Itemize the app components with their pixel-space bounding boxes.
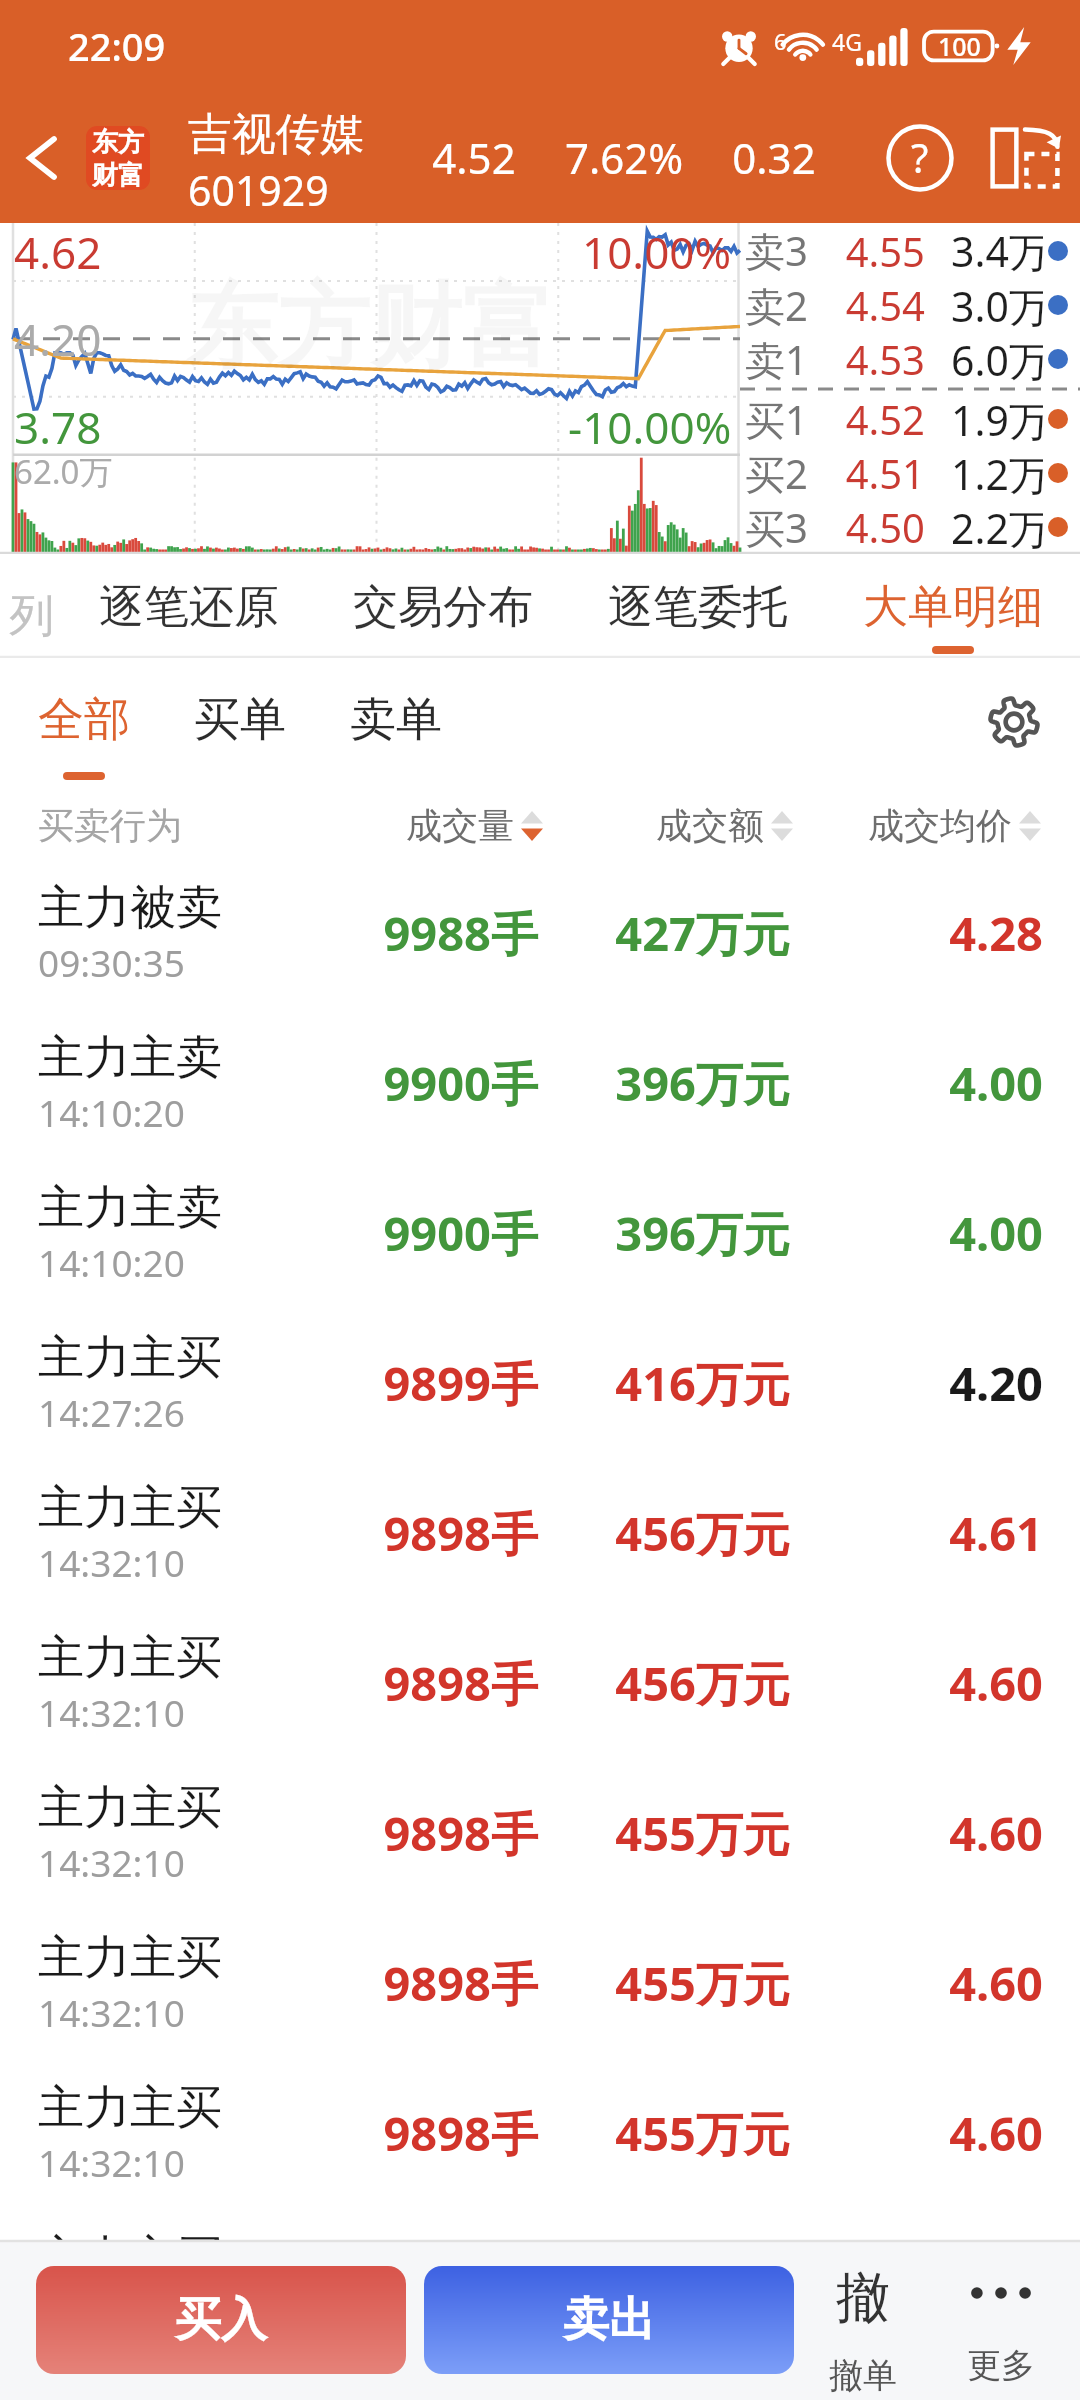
staticText: 456万元 (538, 1651, 790, 1715)
button[interactable]: 成交额 (656, 803, 793, 848)
staticText: 62.0万 (14, 449, 113, 494)
button[interactable]: 撤 (798, 2240, 928, 2400)
staticText: 更多 (967, 2344, 1035, 2387)
staticText: 4.50 (808, 500, 925, 554)
staticText: 卖单 (350, 691, 442, 749)
button[interactable]: 买2 (740, 446, 1080, 500)
staticText: 东方财富 (186, 269, 554, 385)
staticText: 大单明细 (863, 579, 1043, 636)
button[interactable]: 卖3 (740, 223, 1080, 278)
staticText: 4.51 (808, 446, 925, 500)
staticText: 456万元 (538, 1501, 790, 1565)
button[interactable]: 主力主买 (0, 1310, 1080, 1460)
button[interactable]: 主力主卖 (0, 1010, 1080, 1160)
staticText: -10.00% (568, 397, 732, 457)
button[interactable]: 买单 (194, 658, 286, 780)
staticText: 4G (832, 26, 862, 57)
staticText: 主力主买 (38, 1479, 222, 1537)
button[interactable]: 逐笔委托 (570, 554, 825, 658)
staticText: 4.54 (808, 278, 925, 332)
staticText: 卖出 (563, 2291, 655, 2349)
staticText: 东方 (92, 126, 144, 159)
staticText: 主力主买 (38, 2229, 222, 2240)
staticText: 财富 (92, 159, 144, 190)
button[interactable]: 主力主卖 (0, 1160, 1080, 1310)
staticText: 427万元 (538, 901, 790, 965)
staticText: 卖1 (745, 332, 808, 386)
staticText: 交易分布 (353, 579, 533, 636)
staticText: 逐笔委托 (608, 579, 788, 636)
button[interactable]: 卖单 (350, 658, 442, 780)
staticText: 9900手 (328, 1201, 538, 1265)
staticText: 14:10:20 (38, 1087, 185, 1137)
button[interactable]: 主力主买 (0, 1760, 1080, 1910)
staticText: 撤单 (829, 2354, 897, 2397)
button[interactable]: 买3 (740, 500, 1080, 554)
button[interactable]: More (936, 2240, 1066, 2400)
staticText: 6 (774, 26, 787, 56)
staticText: 成交量 (406, 803, 514, 848)
staticText: 主力主卖 (38, 1029, 222, 1087)
button[interactable]: 主力主买 (0, 1910, 1080, 2060)
staticText: 14:32:10 (38, 1687, 185, 1737)
button[interactable]: Back (0, 92, 86, 223)
staticText: 14:32:10 (38, 1537, 185, 1587)
staticText: 4.60 (790, 1951, 1043, 2015)
staticText: 列 (9, 588, 54, 645)
staticText: 9899手 (328, 1351, 538, 1415)
button[interactable]: 卖1 (740, 332, 1080, 386)
button[interactable]: 成交量 (406, 803, 543, 848)
button[interactable]: 主力主买 (0, 1460, 1080, 1610)
staticText: 14:32:10 (38, 1987, 185, 2037)
button[interactable]: 全部 (38, 658, 130, 780)
staticText: 9898手 (328, 1651, 538, 1715)
staticText: 09:30:35 (38, 937, 185, 987)
staticText: 卖3 (745, 223, 808, 278)
staticText: 成交额 (656, 803, 764, 848)
staticText: 0.32 (700, 129, 848, 186)
staticText: 14:10:20 (38, 1237, 185, 1287)
staticText: 4.20 (790, 1351, 1043, 1415)
button[interactable]: 买1 (740, 392, 1080, 446)
button[interactable]: Help (870, 92, 970, 223)
staticText: 4.00 (790, 1201, 1043, 1265)
staticText: 9988手 (328, 901, 538, 965)
button[interactable]: 买入 (36, 2266, 406, 2374)
button[interactable]: 主力被卖 (0, 860, 1080, 1010)
staticText: 3.78 (14, 397, 102, 457)
staticText: 14:32:10 (38, 1837, 185, 1887)
button[interactable]: Switch layout (970, 92, 1080, 223)
staticText: 吉视传媒 (188, 107, 364, 162)
staticText: 2.2万 (951, 500, 1043, 554)
button[interactable]: 卖出 (424, 2266, 794, 2374)
staticText: 买卖行为 (38, 803, 182, 848)
button[interactable]: 成交均价 (868, 803, 1041, 848)
staticText: 主力主买 (38, 1629, 222, 1687)
staticText: ? (911, 130, 929, 184)
staticText: 全部 (38, 691, 130, 749)
staticText: 买2 (745, 446, 808, 500)
staticText: 4.62 (14, 222, 102, 282)
staticText: 9900手 (328, 1051, 538, 1115)
staticText: 455万元 (538, 1951, 790, 2015)
staticText: 14:32:10 (38, 2137, 185, 2187)
button[interactable]: Settings (960, 658, 1068, 786)
button[interactable]: 主力主买 (0, 1610, 1080, 1760)
staticText: 买1 (745, 392, 808, 446)
button[interactable]: 卖2 (740, 278, 1080, 332)
staticText: 9898手 (328, 1501, 538, 1565)
staticText: 4.52 (808, 392, 925, 446)
button[interactable]: 逐笔还原 (62, 554, 316, 658)
button[interactable]: 主力主买 (0, 2210, 1080, 2240)
button[interactable]: 大单明细 (825, 554, 1080, 658)
button[interactable]: 列 (0, 554, 62, 658)
staticText: 396万元 (538, 1051, 790, 1115)
button[interactable]: 主力主买 (0, 2060, 1080, 2210)
staticText: 4.53 (808, 332, 925, 386)
button[interactable]: 交易分布 (316, 554, 570, 658)
staticText: 100 (938, 29, 981, 63)
staticText: 9898手 (328, 2101, 538, 2165)
staticText: 卖2 (745, 278, 808, 332)
staticText: 4.00 (790, 1051, 1043, 1115)
button[interactable]: East Money (86, 126, 150, 190)
